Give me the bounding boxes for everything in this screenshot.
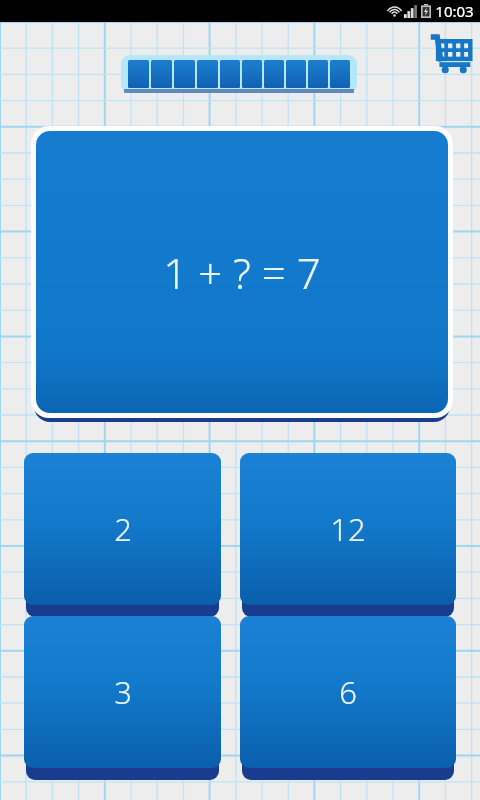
staticText: 2 <box>114 508 132 550</box>
button[interactable]: 3 <box>24 616 221 768</box>
staticText: 3 <box>114 671 132 713</box>
button[interactable]: 12 <box>240 453 456 605</box>
button[interactable]: Shop <box>428 32 474 74</box>
staticText: 12 <box>330 508 366 550</box>
button[interactable]: 1 + ? = 7 <box>36 131 448 413</box>
button[interactable]: 6 <box>240 616 456 768</box>
staticText: 1 + ? = 7 <box>163 244 321 301</box>
staticText: 10:03 <box>435 1 474 21</box>
button[interactable]: 2 <box>24 453 221 605</box>
staticText: 6 <box>339 671 357 713</box>
